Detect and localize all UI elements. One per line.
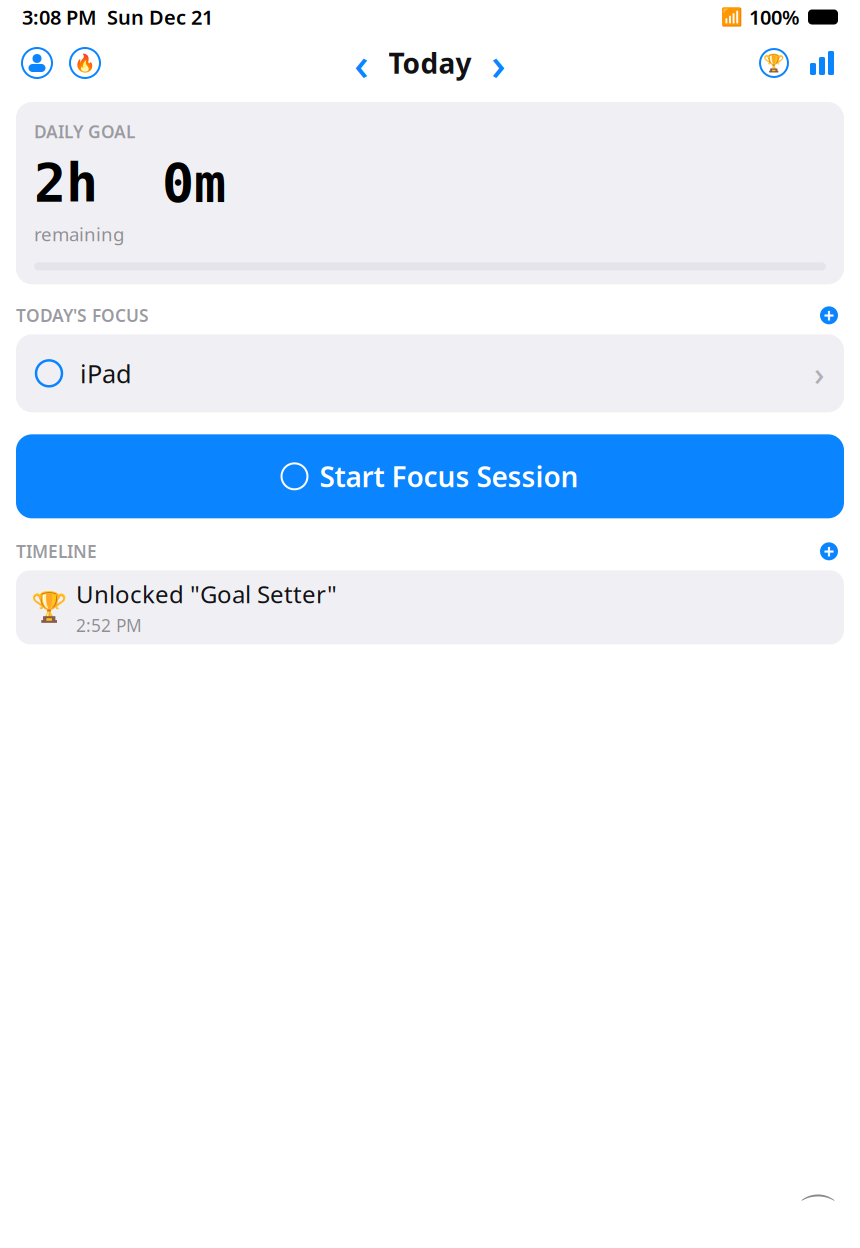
button[interactable]: Next day [485, 46, 511, 80]
staticText: › [491, 33, 506, 93]
button[interactable]: 🏆 [16, 570, 844, 644]
button[interactable]: Previous day [348, 46, 374, 80]
button[interactable]: iPad [16, 334, 844, 412]
staticText: iPad [80, 356, 132, 390]
staticText: ◷ [284, 463, 304, 489]
staticText: 100% [749, 4, 800, 30]
button[interactable]: Add today's focus [814, 300, 844, 330]
staticText: remaining [34, 221, 124, 246]
staticText: DAILY GOAL [34, 120, 135, 143]
button[interactable]: Streak [68, 46, 102, 80]
staticText: Start Focus Session [319, 458, 578, 495]
staticText: › [814, 352, 824, 395]
staticText: ⌒ [798, 1189, 838, 1238]
staticText: Today [388, 44, 471, 82]
staticText: 📶 [721, 7, 743, 27]
staticText: TIMELINE [16, 540, 97, 563]
staticText: 🔥 [74, 53, 96, 73]
staticText: + [823, 303, 834, 328]
staticText: 2:52 PM [76, 614, 142, 637]
button[interactable]: Statistics [806, 47, 838, 79]
staticText: + [823, 539, 834, 564]
staticText: Sun Dec 21 [107, 4, 213, 30]
button[interactable]: ◷ [16, 434, 844, 518]
button[interactable]: Achievements [758, 47, 790, 79]
button[interactable]: Add timeline [814, 536, 844, 566]
button[interactable]: Profile [20, 46, 54, 80]
staticText: Unlocked "Goal Setter" [76, 578, 337, 610]
staticText: 🏆 [30, 591, 67, 624]
staticText: 3:08 PM [22, 4, 97, 30]
staticText: 🏆 [763, 53, 785, 73]
staticText: ‹ [354, 33, 369, 93]
staticText: 2h 0m [34, 153, 226, 213]
staticText: TODAY'S FOCUS [16, 304, 149, 327]
